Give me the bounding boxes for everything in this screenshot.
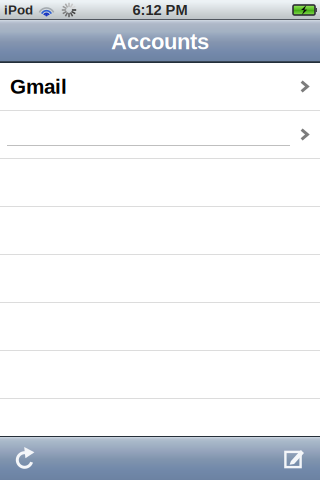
button[interactable] (0, 111, 320, 159)
button[interactable]: Gmail (0, 63, 320, 111)
staticText: iPod (4, 3, 33, 17)
staticText: 6:12 PM (132, 2, 187, 18)
staticText: Gmail (10, 75, 67, 98)
button[interactable]: Refresh (0, 437, 50, 480)
staticText: Accounts (111, 29, 209, 54)
button[interactable]: Compose (270, 437, 320, 480)
